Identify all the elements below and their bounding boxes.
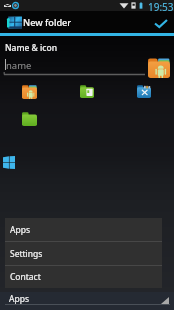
staticText: New folder [23,16,72,29]
staticText: Settings [10,248,43,260]
button[interactable]: Done [146,11,174,33]
button[interactable]: Green folder [22,112,37,126]
button[interactable]: Windows [3,156,15,169]
button[interactable]: Settings [5,242,162,265]
staticText: Apps [9,293,29,305]
staticText: name [6,59,32,72]
button[interactable]: name [3,56,145,76]
button[interactable]: Apps [0,292,174,310]
button[interactable]: Apps [5,218,162,241]
button[interactable]: Contact [5,266,162,288]
staticText: 19:53 [148,0,174,11]
button[interactable]: Blue tools folder [137,85,151,98]
staticText: Apps [10,224,30,236]
button[interactable]: Green document folder [80,85,94,98]
staticText: Contact [10,271,41,283]
button[interactable]: Selected icon [148,58,170,78]
button[interactable]: Orange android folder [22,85,37,99]
staticText: Name & icon [5,42,58,54]
